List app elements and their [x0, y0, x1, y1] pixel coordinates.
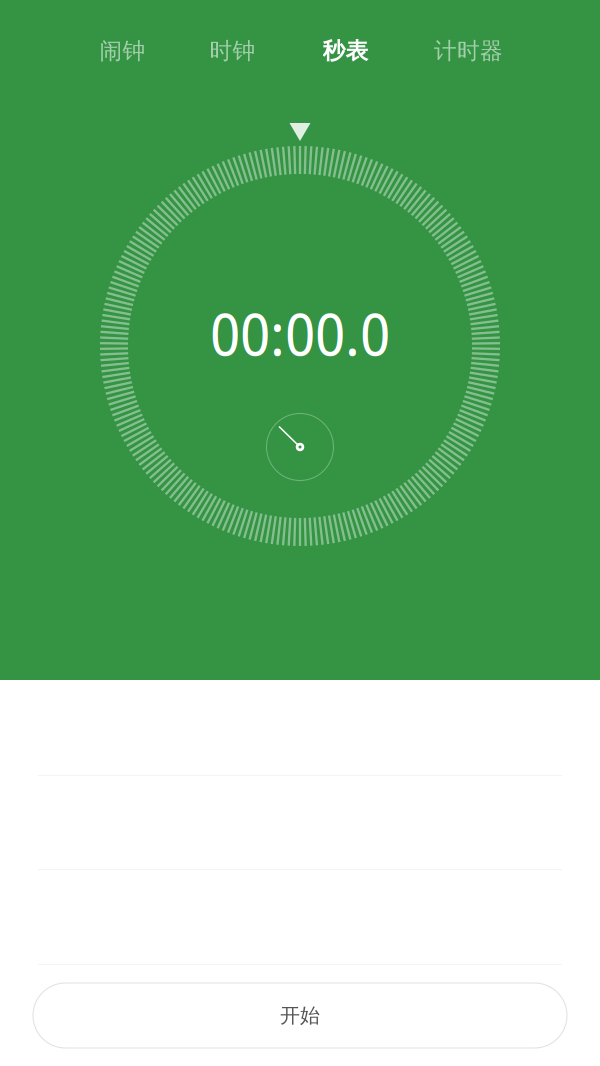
staticText: 00:00.0 — [210, 293, 390, 373]
button[interactable]: 闹钟 — [68, 29, 177, 73]
staticText: 闹钟 — [99, 37, 145, 65]
button[interactable]: 计时器 — [403, 29, 534, 73]
staticText: 开始 — [280, 1003, 320, 1028]
button[interactable]: 开始 — [33, 983, 567, 1048]
staticText: 秒表 — [322, 37, 368, 65]
staticText: 计时器 — [434, 37, 503, 65]
staticText: 时钟 — [209, 37, 255, 65]
button[interactable]: 时钟 — [177, 29, 288, 73]
button[interactable]: 秒表 — [288, 29, 403, 73]
